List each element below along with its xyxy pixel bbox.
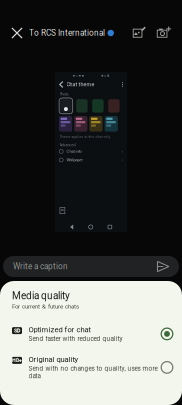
button[interactable]: Markup	[128, 20, 152, 46]
staticText: Original quality	[28, 355, 78, 364]
staticText: Chat theme	[67, 81, 95, 88]
staticText: Theme applies to this chat only.	[60, 135, 111, 139]
staticText: Advanced	[60, 143, 76, 147]
staticText: For current & future chats	[12, 303, 79, 310]
button[interactable]: Close	[5, 18, 29, 48]
staticText: Media quality	[12, 290, 70, 302]
staticText: ▪ ▴ ▮	[101, 74, 109, 77]
button[interactable]: HD+	[0, 350, 182, 385]
staticText: Send faster with reduced quality	[28, 335, 122, 342]
button[interactable]: SD	[0, 318, 182, 350]
staticText: ▪ ▫ ▪ ▪	[73, 74, 84, 77]
staticText: Chat info	[66, 149, 81, 154]
staticText: Write a caption	[13, 262, 68, 271]
staticText: To RCS International	[29, 28, 105, 38]
staticText: Optimized for chat	[28, 325, 90, 334]
staticText: ›	[122, 149, 123, 154]
button[interactable]: Take photo	[152, 20, 176, 46]
staticText: HD+	[12, 357, 22, 363]
staticText: SD	[14, 327, 20, 334]
staticText: Photo	[60, 92, 69, 96]
button[interactable]: Send	[153, 256, 173, 276]
staticText: Send with no changes to quality, uses mo…	[28, 365, 157, 380]
staticText: ›	[122, 157, 123, 162]
staticText: Wallpaper	[66, 158, 82, 162]
